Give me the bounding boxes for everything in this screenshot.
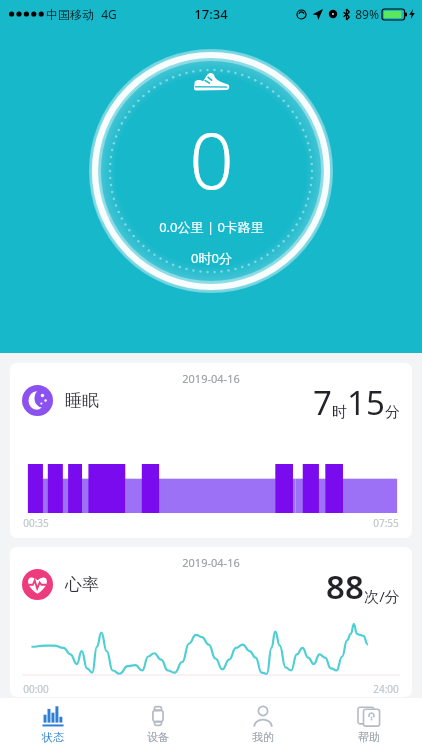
staticText: 分 [385,403,400,422]
staticText: 89% [355,6,379,22]
button[interactable]: 状态 [0,698,105,750]
staticText: 状态 [42,730,64,744]
staticText: 睡眠 [65,390,99,411]
staticText: 心率 [65,574,99,595]
button[interactable]: 2019-04-16 [10,363,412,538]
staticText: 15 [347,380,385,425]
button[interactable]: 帮助 [316,698,422,750]
staticText: 帮助 [358,730,380,744]
staticText: 17:34 [194,5,228,23]
staticText: 07:55 [373,516,399,530]
staticText: 88 [326,564,364,609]
staticText: 2019-04-16 [182,371,240,386]
staticText: 2019-04-16 [182,555,240,570]
staticText: 0.0公里 | 0卡路里 [159,218,264,236]
staticText: 设备 [147,730,169,744]
button[interactable]: 2019-04-16 [10,547,412,697]
staticText: 24:00 [373,682,399,696]
staticText: 0 [189,106,234,212]
staticText: 7 [313,380,332,425]
button[interactable]: 我的 [210,698,316,750]
staticText: 00:00 [23,682,49,696]
staticText: 00:35 [23,516,49,530]
staticText: 时 [332,403,347,422]
staticText: 0时0分 [191,249,232,267]
staticText: 我的 [252,730,274,744]
button[interactable]: 设备 [105,698,210,750]
staticText: 次/分 [364,586,400,606]
staticText: 4G [101,6,117,22]
staticText: 中国移动 [46,7,94,22]
